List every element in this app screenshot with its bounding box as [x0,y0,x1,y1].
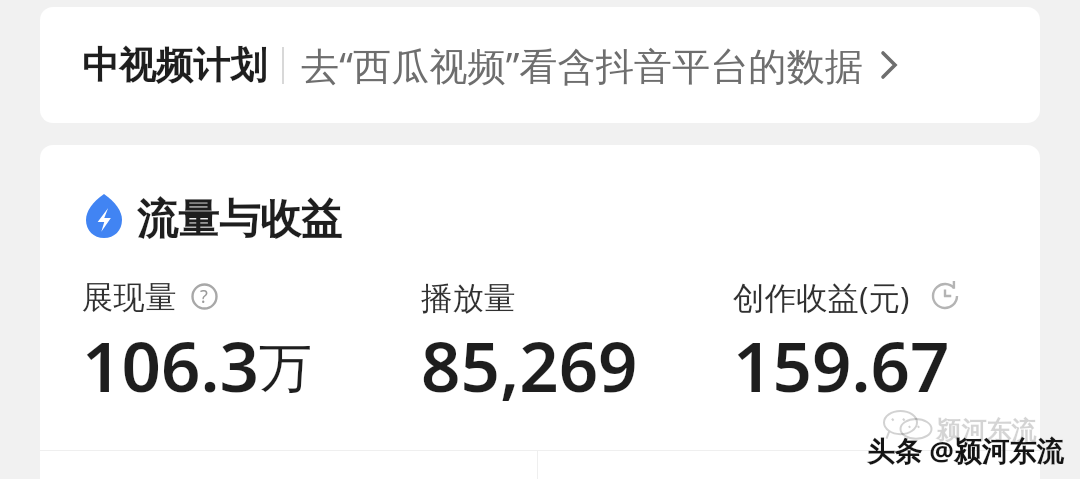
button[interactable]: 流量与收益 [86,194,342,246]
staticText: 创作收益(元) [733,275,910,315]
staticText: 展现量 [82,278,177,318]
button[interactable]: 展现量 [82,278,421,412]
staticText: ? [200,284,208,309]
staticText: 中视频计划 [82,42,267,89]
button[interactable]: 创作收益(元) [733,278,993,412]
button[interactable]: Help [190,282,218,310]
staticText: 播放量 [421,279,516,319]
staticText: 流量与收益 [137,194,342,246]
staticText: 85,269 [421,318,638,412]
staticText: 万 [259,335,312,402]
button[interactable]: 播放量 [421,278,733,412]
staticText: 去“西瓜视频”看含抖音平台的数据 [301,39,864,91]
staticText: 头条 @颍河东流 [867,432,1064,470]
staticText: 159.67 [733,318,950,412]
button[interactable]: History [931,282,959,310]
staticText: 颍河东流 [936,415,1036,446]
button[interactable]: 中视频计划 [40,7,1040,123]
staticText: 106.3 [82,318,259,412]
